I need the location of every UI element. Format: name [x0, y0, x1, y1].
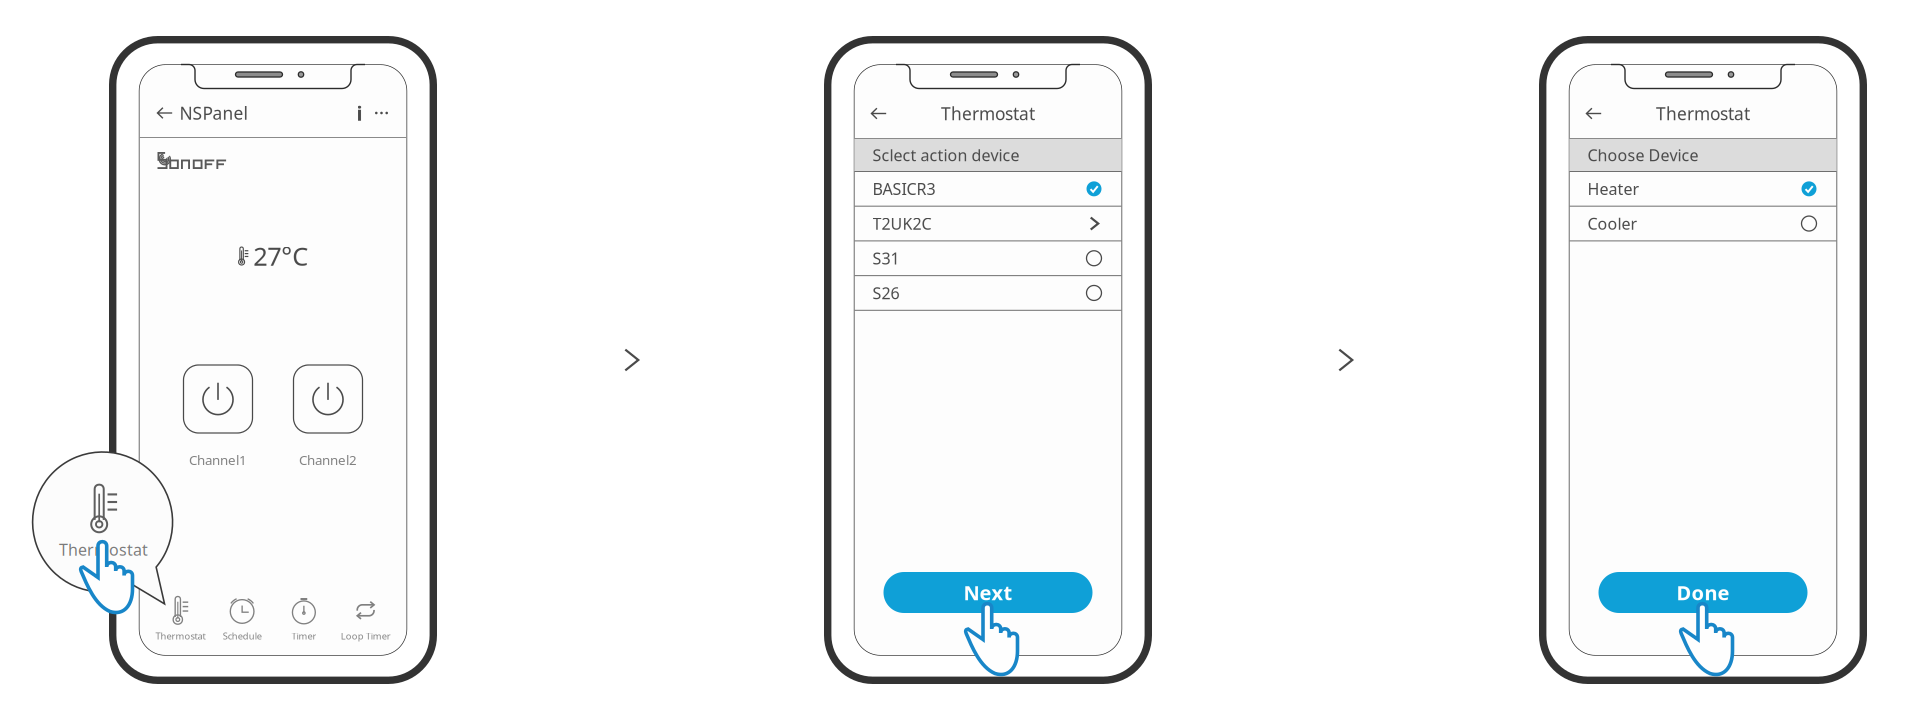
button[interactable]: Thermostat	[149, 596, 211, 642]
button[interactable]: Back	[854, 105, 886, 121]
staticText: Channel1	[189, 451, 247, 469]
staticText: Thermostat	[941, 102, 1035, 125]
staticText: Thermostat	[1656, 102, 1750, 125]
staticText: Schedule	[223, 630, 262, 642]
button[interactable]: Cooler	[1569, 207, 1836, 241]
button[interactable]: Channel1	[183, 365, 252, 433]
button[interactable]: BASICR3	[854, 172, 1121, 207]
button[interactable]: Heater	[1569, 172, 1836, 207]
staticText: BASICR3	[872, 178, 935, 199]
button[interactable]: More	[368, 89, 394, 137]
button[interactable]: Next	[883, 572, 1092, 613]
staticText: Heater	[1587, 178, 1639, 199]
staticText: Thermostat	[155, 630, 205, 642]
button[interactable]: S31	[854, 241, 1121, 276]
button[interactable]: Info	[350, 89, 368, 137]
staticText: S26	[872, 282, 899, 303]
button[interactable]: NSPanel	[139, 89, 257, 137]
button[interactable]: Back	[1569, 105, 1601, 121]
staticText: Thermostat	[59, 539, 148, 560]
staticText: Choose Device	[1587, 144, 1698, 166]
staticText: 27°C	[253, 239, 308, 273]
button[interactable]: T2UK2C	[854, 207, 1121, 241]
staticText: Next	[963, 579, 1012, 606]
button[interactable]: Loop Timer	[335, 596, 397, 642]
button[interactable]: Schedule	[211, 596, 273, 642]
staticText: NSPanel	[179, 101, 247, 124]
staticText: Loop Timer	[341, 630, 391, 642]
staticText: Sclect action device	[872, 144, 1019, 166]
button[interactable]: Timer	[273, 596, 335, 642]
staticText: T2UK2C	[872, 213, 931, 234]
staticText: Channel2	[299, 451, 357, 469]
staticText: i	[356, 100, 362, 126]
staticText: Cooler	[1587, 213, 1637, 234]
button[interactable]: S26	[854, 276, 1121, 311]
staticText: S31	[872, 248, 899, 269]
button[interactable]: Done	[1598, 572, 1807, 613]
button[interactable]: Channel2	[293, 365, 362, 433]
staticText: Done	[1676, 579, 1729, 606]
staticText: Timer	[291, 630, 316, 642]
